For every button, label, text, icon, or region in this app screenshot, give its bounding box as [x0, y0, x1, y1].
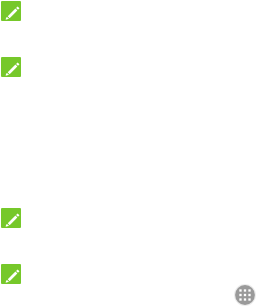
button[interactable]: Edit note — [1, 208, 21, 228]
button[interactable]: Edit note — [1, 264, 21, 284]
button[interactable]: Edit note — [0, 208, 257, 228]
button[interactable]: Edit note — [0, 264, 257, 284]
button[interactable]: Edit note — [1, 1, 21, 21]
button[interactable]: All apps — [234, 284, 256, 306]
button[interactable]: Edit note — [0, 1, 257, 21]
button[interactable]: Edit note — [1, 57, 21, 77]
button[interactable]: Edit note — [0, 57, 257, 77]
